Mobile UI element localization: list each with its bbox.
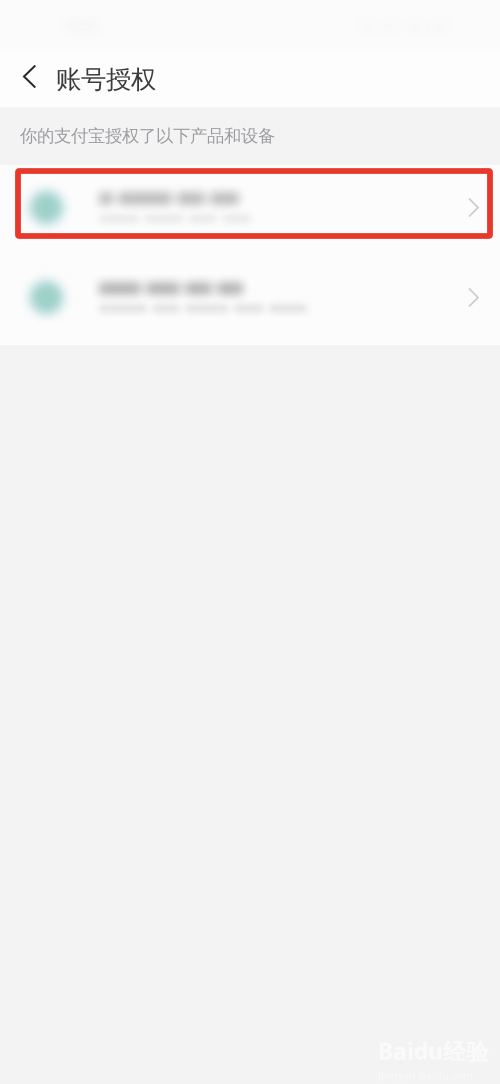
button[interactable]	[0, 165, 500, 250]
staticText: 你的支付宝授权了以下产品和设备	[20, 125, 275, 147]
button[interactable]	[0, 250, 500, 345]
button[interactable]: Back	[0, 52, 59, 107]
staticText: 账号授权	[56, 64, 156, 95]
